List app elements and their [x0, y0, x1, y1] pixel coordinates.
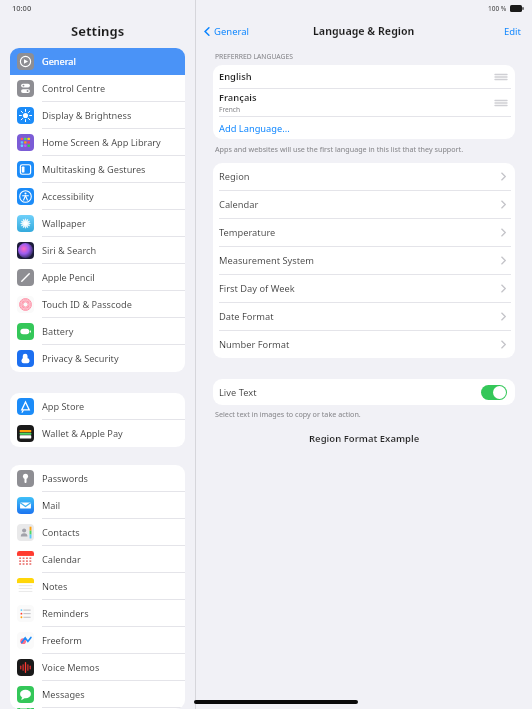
- staticText: Region Format Example: [309, 432, 420, 445]
- button[interactable]: Control Centre: [10, 75, 185, 102]
- staticText: 10:00: [12, 3, 32, 13]
- button[interactable]: Number Format: [217, 331, 511, 358]
- button[interactable]: Contacts: [10, 519, 185, 546]
- button[interactable]: Wallpaper: [10, 210, 185, 237]
- staticText: Reminders: [42, 607, 89, 620]
- button[interactable]: Siri & Search: [10, 237, 185, 264]
- button[interactable]: Live Text toggle, on: [481, 385, 507, 400]
- staticText: Touch ID & Passcode: [42, 298, 132, 311]
- staticText: Apps and websites will use the first lan…: [215, 144, 464, 154]
- button[interactable]: Reminders: [10, 600, 185, 627]
- staticText: Calendar: [42, 553, 81, 566]
- button[interactable]: Privacy & Security: [10, 345, 185, 372]
- button[interactable]: Apple Pencil: [10, 264, 185, 291]
- staticText: Siri & Search: [42, 244, 97, 257]
- button[interactable]: Add Language...: [217, 117, 511, 139]
- button[interactable]: Temperature: [217, 219, 511, 246]
- staticText: Wallpaper: [42, 217, 86, 230]
- staticText: First Day of Week: [219, 282, 295, 295]
- staticText: 100 %: [488, 4, 507, 13]
- staticText: Battery: [42, 325, 74, 338]
- staticText: PREFERRED LANGUAGES: [215, 52, 293, 61]
- staticText: Contacts: [42, 526, 80, 539]
- button[interactable]: Voice Memos: [10, 654, 185, 681]
- staticText: Wallet & Apple Pay: [42, 427, 123, 440]
- button[interactable]: Display & Brightness: [10, 102, 185, 129]
- staticText: Notes: [42, 580, 68, 593]
- staticText: Display & Brightness: [42, 109, 132, 122]
- button[interactable]: Edit: [504, 25, 522, 38]
- button[interactable]: Mail: [10, 492, 185, 519]
- button[interactable]: Live Text: [217, 379, 511, 405]
- staticText: Live Text: [219, 386, 257, 399]
- button[interactable]: Date Format: [217, 303, 511, 330]
- button[interactable]: Notes: [10, 573, 185, 600]
- button[interactable]: General: [203, 25, 250, 38]
- staticText: Number Format: [219, 338, 290, 351]
- button[interactable]: Accessibility: [10, 183, 185, 210]
- staticText: App Store: [42, 400, 85, 413]
- button[interactable]: FaceTime: [10, 708, 185, 709]
- staticText: Voice Memos: [42, 661, 100, 674]
- button[interactable]: General: [10, 48, 185, 75]
- staticText: Measurement System: [219, 254, 315, 267]
- staticText: Passwords: [42, 472, 88, 485]
- staticText: Control Centre: [42, 82, 106, 95]
- button[interactable]: Calendar: [10, 546, 185, 573]
- staticText: Français: [219, 91, 257, 104]
- staticText: Select text in images to copy or take ac…: [215, 409, 361, 419]
- staticText: Date Format: [219, 310, 274, 323]
- button[interactable]: Wallet & Apple Pay: [10, 420, 185, 447]
- staticText: Messages: [42, 688, 85, 701]
- button[interactable]: English: [217, 65, 511, 88]
- button[interactable]: Calendar: [217, 191, 511, 218]
- button[interactable]: App Store: [10, 393, 185, 420]
- staticText: Apple Pencil: [42, 271, 95, 284]
- staticText: Add Language...: [219, 122, 290, 135]
- button[interactable]: Freeform: [10, 627, 185, 654]
- button[interactable]: Home Screen & App Library: [10, 129, 185, 156]
- staticText: Mail: [42, 499, 61, 512]
- staticText: Calendar: [219, 198, 259, 211]
- button[interactable]: Multitasking & Gestures: [10, 156, 185, 183]
- button[interactable]: Français: [217, 89, 511, 116]
- button[interactable]: Measurement System: [217, 247, 511, 274]
- button[interactable]: Messages: [10, 681, 185, 708]
- staticText: General: [214, 25, 250, 38]
- staticText: Settings: [71, 22, 125, 40]
- staticText: Freeform: [42, 634, 82, 647]
- staticText: Home Screen & App Library: [42, 136, 161, 149]
- staticText: French: [219, 105, 241, 114]
- staticText: Privacy & Security: [42, 352, 119, 365]
- staticText: English: [219, 70, 252, 83]
- button[interactable]: Passwords: [10, 465, 185, 492]
- staticText: Region: [219, 170, 250, 183]
- staticText: Accessibility: [42, 190, 94, 203]
- button[interactable]: Touch ID & Passcode: [10, 291, 185, 318]
- button[interactable]: Battery: [10, 318, 185, 345]
- button[interactable]: First Day of Week: [217, 275, 511, 302]
- staticText: Multitasking & Gestures: [42, 163, 146, 176]
- button[interactable]: Region: [217, 163, 511, 190]
- staticText: Temperature: [219, 226, 276, 239]
- staticText: General: [42, 55, 76, 68]
- staticText: Language & Region: [313, 24, 415, 38]
